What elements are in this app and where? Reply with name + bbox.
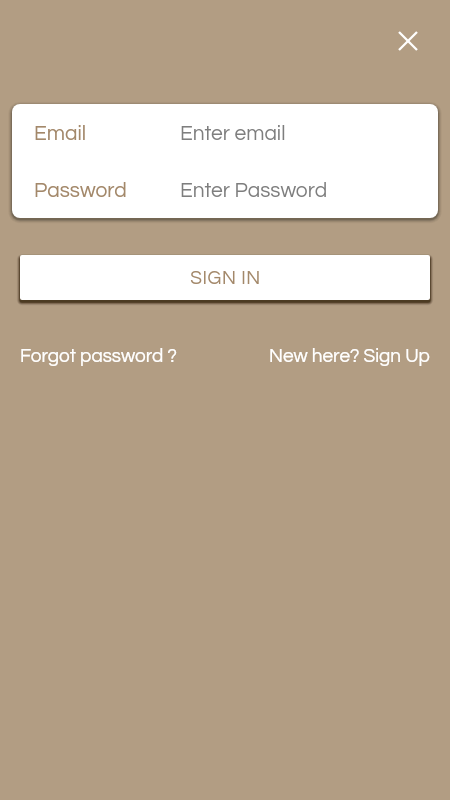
button[interactable]: Forgot password ? — [20, 342, 178, 370]
staticText: Forgot password ? — [20, 346, 178, 366]
button[interactable]: Close — [385, 18, 430, 63]
staticText: Email — [34, 123, 87, 145]
staticText: Enter Password — [180, 180, 328, 202]
button[interactable]: SIGN IN — [20, 255, 430, 300]
staticText: Password — [34, 180, 127, 202]
staticText: SIGN IN — [190, 268, 261, 288]
button[interactable]: Password — [12, 161, 438, 218]
staticText: Enter email — [180, 123, 286, 145]
button[interactable]: New here? Sign Up — [269, 342, 430, 370]
button[interactable]: Email — [12, 104, 438, 161]
staticText: New here? Sign Up — [269, 346, 430, 366]
